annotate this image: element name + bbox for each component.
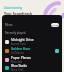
staticText: Nova Drift: [11, 68, 24, 72]
staticText: Golden Hour: [11, 47, 31, 51]
button[interactable]: Golden Hour: [2, 46, 62, 55]
staticText: Mira Vale: [11, 60, 23, 64]
staticText: Aurora Lane: [11, 42, 26, 46]
button[interactable]: Midnight Drive: [2, 37, 62, 46]
staticText: Shuffle: [51, 24, 59, 27]
staticText: Your Soundtrack: [4, 11, 33, 16]
button[interactable]: Blue Static: [2, 64, 62, 72]
staticText: Blue Static: [11, 64, 28, 68]
button[interactable]: Paper Planes: [2, 55, 62, 64]
staticText: Sol Marine: [11, 51, 24, 55]
staticText: Good morning: [4, 6, 23, 10]
staticText: Paper Planes: [11, 56, 31, 60]
button[interactable]: Shuffle: [51, 23, 59, 27]
staticText: Midnight Drive: [11, 38, 34, 42]
staticText: Mixes: [5, 23, 13, 27]
staticText: Recently played: [5, 31, 26, 35]
other: Now playing: [55, 49, 59, 53]
